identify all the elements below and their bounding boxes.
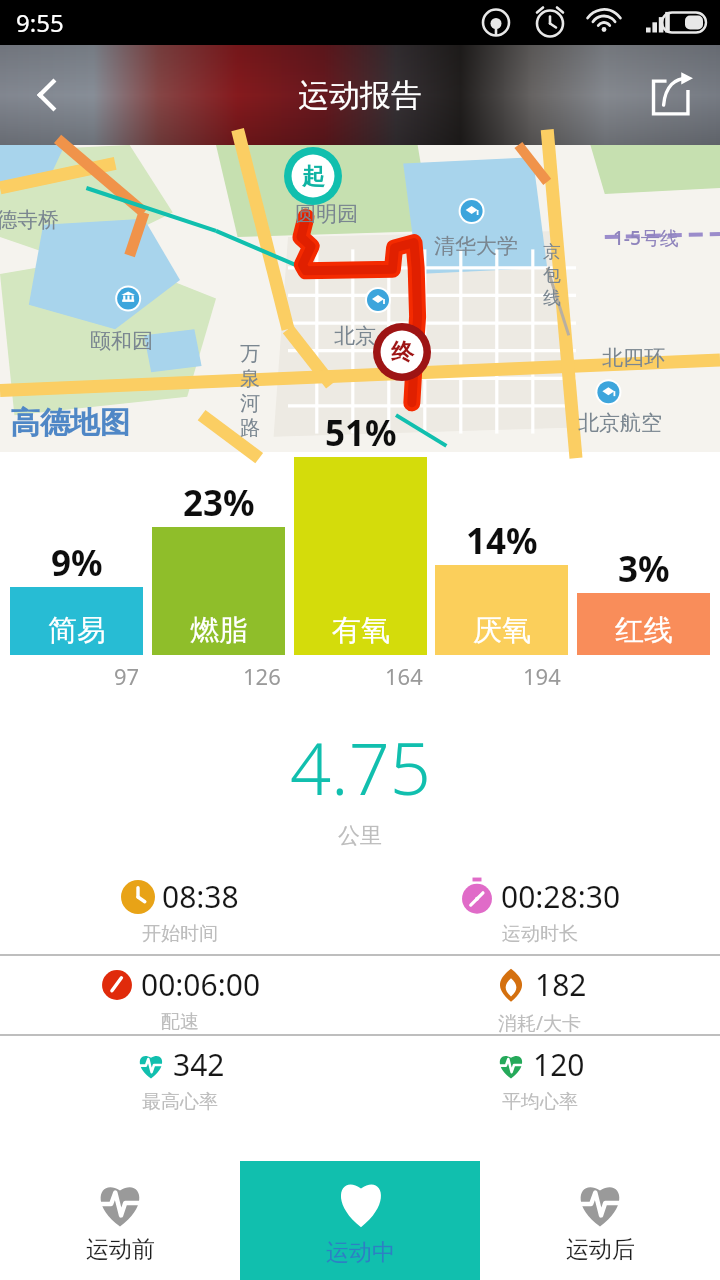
button[interactable]: 运动中 bbox=[240, 1161, 480, 1280]
button[interactable]: Back bbox=[0, 47, 96, 143]
staticText: 3% bbox=[618, 545, 670, 593]
staticText: 14% bbox=[466, 517, 538, 565]
staticText: 08:38 bbox=[162, 876, 239, 917]
staticText: 配速 bbox=[161, 1010, 199, 1034]
staticText: 164 bbox=[385, 661, 423, 691]
button[interactable]: 厌氧 bbox=[435, 565, 568, 655]
staticText: 颐和园 bbox=[90, 328, 153, 354]
button[interactable]: 燃脂 bbox=[152, 527, 285, 655]
staticText: 清华大学 bbox=[434, 233, 518, 259]
button[interactable]: 342 bbox=[0, 1044, 360, 1114]
button[interactable]: 简易 bbox=[10, 587, 143, 655]
staticText: 起 bbox=[302, 162, 325, 191]
staticText: 万 bbox=[240, 341, 260, 366]
staticText: 简易 bbox=[48, 612, 106, 649]
staticText: 23% bbox=[183, 479, 255, 527]
button[interactable]: 有氧 bbox=[294, 457, 427, 655]
staticText: 北京 bbox=[334, 323, 376, 349]
staticText: 路 bbox=[240, 416, 260, 441]
staticText: 126 bbox=[243, 661, 281, 691]
staticText: 9:55 bbox=[16, 6, 64, 39]
staticText: 1-5号线 bbox=[613, 225, 679, 251]
staticText: 51% bbox=[325, 409, 397, 457]
staticText: 运动中 bbox=[326, 1238, 395, 1267]
staticText: 公里 bbox=[338, 822, 382, 850]
staticText: 运动前 bbox=[86, 1235, 155, 1264]
staticText: 德寺桥 bbox=[0, 207, 59, 233]
staticText: 泉 bbox=[240, 366, 260, 391]
staticText: 00:28:30 bbox=[501, 876, 621, 917]
staticText: 00:06:00 bbox=[141, 964, 261, 1005]
staticText: 红线 bbox=[615, 612, 673, 649]
button[interactable]: 运动前 bbox=[0, 1161, 240, 1280]
button[interactable]: 红线 bbox=[577, 593, 710, 655]
staticText: 厌氧 bbox=[473, 612, 531, 649]
staticText: 包 bbox=[543, 264, 561, 287]
button[interactable]: 08:38 bbox=[0, 876, 360, 946]
button[interactable]: 182 bbox=[360, 964, 720, 1034]
staticText: 4.75 bbox=[290, 718, 431, 816]
staticText: 运动时长 bbox=[502, 922, 578, 946]
staticText: 河 bbox=[240, 391, 260, 416]
button[interactable]: 00:28:30 bbox=[360, 876, 720, 946]
staticText: 北京航空 bbox=[578, 410, 662, 436]
staticText: 运动报告 bbox=[298, 76, 422, 115]
staticText: 高德地图 bbox=[10, 404, 130, 442]
button[interactable]: Share bbox=[624, 47, 720, 143]
staticText: 北四环 bbox=[602, 345, 665, 371]
staticText: 开始时间 bbox=[142, 922, 218, 946]
staticText: 9% bbox=[51, 539, 103, 587]
staticText: 最高心率 bbox=[142, 1090, 218, 1114]
staticText: 燃脂 bbox=[190, 612, 248, 649]
staticText: 平均心率 bbox=[502, 1090, 578, 1114]
button[interactable]: 00:06:00 bbox=[0, 964, 360, 1034]
staticText: 194 bbox=[523, 661, 561, 691]
staticText: 消耗/大卡 bbox=[498, 1010, 582, 1034]
staticText: 342 bbox=[173, 1044, 225, 1085]
button[interactable]: 运动后 bbox=[480, 1161, 720, 1280]
staticText: 京 bbox=[543, 241, 561, 264]
staticText: 运动后 bbox=[566, 1235, 635, 1264]
staticText: 97 bbox=[114, 661, 140, 691]
staticText: 圆明园 bbox=[295, 201, 358, 227]
staticText: 线 bbox=[543, 287, 561, 310]
staticText: 终 bbox=[391, 338, 414, 367]
staticText: 有氧 bbox=[332, 612, 390, 649]
staticText: 120 bbox=[533, 1044, 585, 1085]
button[interactable]: 120 bbox=[360, 1044, 720, 1114]
staticText: 182 bbox=[535, 964, 587, 1005]
